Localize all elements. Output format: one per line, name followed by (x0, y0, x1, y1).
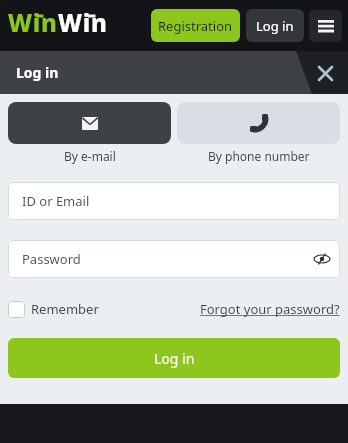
staticText: ID or Email (22, 192, 90, 210)
staticText: Log in (154, 349, 195, 368)
staticText: Win (58, 6, 108, 39)
staticText: By e-mail (64, 148, 116, 164)
staticText: Remember (31, 300, 99, 318)
button[interactable]: Forgot your password? (200, 300, 340, 318)
button[interactable] (309, 10, 342, 42)
button[interactable]: Win (8, 6, 108, 46)
staticText: Log in (256, 17, 294, 35)
button[interactable]: Log in (8, 338, 340, 378)
staticText: Password (22, 250, 81, 268)
button[interactable]: Remember (8, 300, 99, 318)
button[interactable]: ID or Email (8, 182, 340, 220)
button[interactable]: Password (8, 240, 340, 278)
button[interactable]: Log in (246, 9, 304, 42)
button[interactable] (177, 102, 340, 144)
button[interactable] (8, 102, 171, 144)
staticText: Win (8, 6, 58, 39)
staticText: Log in (16, 63, 59, 82)
button[interactable]: Registration (151, 9, 240, 42)
staticText: By phone number (208, 148, 310, 164)
staticText: Registration (158, 17, 233, 35)
button[interactable] (311, 59, 339, 87)
